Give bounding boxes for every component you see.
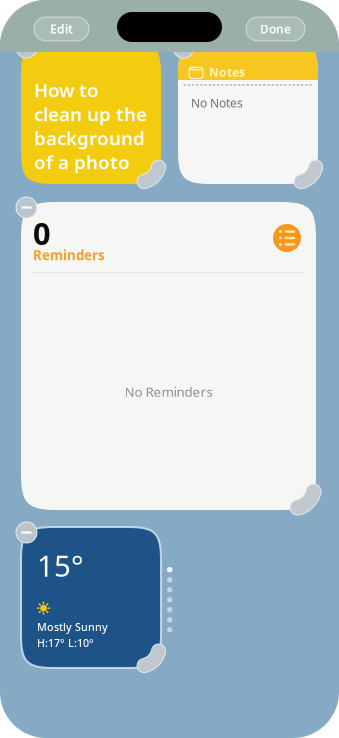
staticText: How to <box>34 78 99 102</box>
staticText: Notes <box>209 64 245 80</box>
button[interactable]: Remove widget <box>16 197 37 218</box>
button[interactable]: Remove widget <box>173 37 194 58</box>
button[interactable]: Notes <box>178 42 318 184</box>
staticText: No Notes <box>191 95 243 111</box>
staticText: background <box>34 126 145 150</box>
staticText: Edit <box>50 21 73 37</box>
staticText: clean up the <box>34 102 147 126</box>
staticText: of a photo <box>34 150 130 174</box>
button[interactable]: Remove widget <box>16 37 37 58</box>
staticText: Reminders <box>33 246 105 264</box>
staticText: Done <box>260 21 291 37</box>
button[interactable]: 15° <box>21 527 161 668</box>
button[interactable]: Remove widget <box>16 522 37 543</box>
staticText: H:17° L:10° <box>37 636 94 650</box>
button[interactable]: How to <box>21 42 161 184</box>
staticText: 0 <box>33 213 51 253</box>
button[interactable]: Done <box>246 17 305 41</box>
staticText: Mostly Sunny <box>37 620 108 634</box>
button[interactable]: Edit <box>34 17 89 41</box>
staticText: 15° <box>37 546 84 585</box>
button[interactable]: 0 <box>21 202 316 510</box>
staticText: No Reminders <box>124 383 212 400</box>
